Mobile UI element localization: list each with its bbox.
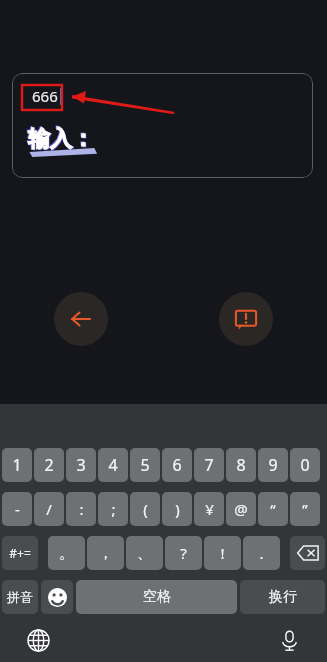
button[interactable]: 666 (12, 73, 313, 178)
button[interactable]: . (243, 536, 280, 570)
staticText: “ (270, 499, 276, 519)
staticText: ) (175, 499, 180, 519)
staticText: #+= (9, 545, 31, 561)
staticText: 0 (300, 454, 310, 476)
staticText: : (79, 499, 84, 519)
staticText: 输入： (27, 124, 93, 152)
button[interactable]: “ (258, 492, 288, 526)
staticText: 换行 (269, 588, 297, 606)
button[interactable]: 7 (194, 448, 224, 482)
button[interactable]: 9 (258, 448, 288, 482)
button[interactable]: / (34, 492, 64, 526)
button[interactable]: ¥ (194, 492, 224, 526)
button[interactable]: 0 (290, 448, 320, 482)
button[interactable]: 6 (162, 448, 192, 482)
button[interactable]: - (2, 492, 32, 526)
staticText: / (46, 499, 52, 519)
button[interactable]: Back (54, 292, 108, 346)
staticText: 拼音 (7, 589, 33, 605)
button[interactable]: #+= (2, 536, 38, 570)
staticText: 1 (12, 454, 22, 476)
staticText: ; (111, 499, 116, 519)
button[interactable]: 拼音 (2, 580, 38, 614)
button[interactable]: Feedback (219, 292, 273, 346)
button[interactable]: ， (87, 536, 124, 570)
staticText: 空格 (143, 588, 171, 606)
button[interactable]: Backspace (290, 536, 325, 570)
button[interactable]: 8 (226, 448, 256, 482)
staticText: ! (220, 543, 225, 563)
staticText: ¥ (205, 499, 214, 519)
button[interactable]: ) (162, 492, 192, 526)
button[interactable]: 5 (130, 448, 160, 482)
staticText: 6 (172, 454, 182, 476)
button[interactable]: ! (204, 536, 241, 570)
staticText: 5 (140, 454, 150, 476)
button[interactable]: 3 (66, 448, 96, 482)
other: Emoji (41, 580, 73, 614)
staticText: 输入： (29, 126, 95, 154)
button[interactable]: 。 (48, 536, 85, 570)
staticText: 666 (32, 86, 58, 106)
staticText: 7 (204, 454, 214, 476)
staticText: 。 (59, 544, 74, 563)
staticText: @ (234, 499, 248, 519)
staticText: ? (180, 543, 187, 563)
staticText: 2 (44, 454, 54, 476)
staticText: 3 (76, 454, 86, 476)
button[interactable]: 1 (2, 448, 32, 482)
staticText: ( (143, 499, 148, 519)
button[interactable]: ? (165, 536, 202, 570)
button[interactable]: 换行 (240, 580, 325, 614)
staticText: ， (98, 544, 113, 563)
button[interactable]: Emoji (41, 580, 73, 614)
button[interactable]: ” (290, 492, 320, 526)
button[interactable]: Switch language (22, 624, 54, 656)
staticText: 输入： (28, 125, 94, 153)
button[interactable]: ( (130, 492, 160, 526)
staticText: 、 (137, 544, 152, 563)
staticText: . (259, 543, 264, 563)
staticText: ” (302, 499, 308, 519)
button[interactable]: Voice input (273, 624, 305, 656)
button[interactable]: @ (226, 492, 256, 526)
staticText: 9 (268, 454, 278, 476)
button[interactable]: 2 (34, 448, 64, 482)
button[interactable]: 、 (126, 536, 163, 570)
staticText: 4 (108, 454, 118, 476)
button[interactable]: 空格 (76, 580, 237, 614)
other: Backspace (290, 536, 325, 570)
button[interactable]: : (66, 492, 96, 526)
staticText: 8 (236, 454, 246, 476)
button[interactable]: ; (98, 492, 128, 526)
button[interactable]: 4 (98, 448, 128, 482)
staticText: - (15, 499, 20, 519)
